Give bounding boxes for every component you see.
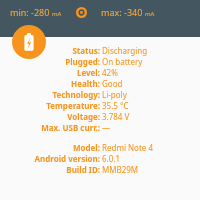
button[interactable]: Voltage: [0, 111, 200, 122]
button[interactable]: Reset measurements [76, 7, 87, 18]
staticText: Discharging [102, 45, 148, 56]
button[interactable]: Plugged: [0, 56, 200, 67]
button[interactable]: Technology: [0, 89, 200, 100]
button[interactable]: Temperature: [0, 100, 200, 111]
button[interactable]: Model: [0, 142, 200, 153]
staticText: On battery [102, 56, 143, 67]
staticText: 6.0.1 [102, 153, 121, 164]
staticText: mA [145, 10, 155, 18]
staticText: Model: [72, 142, 100, 153]
staticText: — [102, 122, 110, 133]
staticText: Voltage: [67, 111, 100, 122]
staticText: MMB29M [102, 164, 139, 175]
button[interactable]: Health: [0, 78, 200, 89]
staticText: Max. USB curr.: [41, 122, 100, 133]
button[interactable]: Status: [0, 45, 200, 56]
staticText: Plugged: [65, 56, 100, 67]
button[interactable]: min: -280 [10, 6, 62, 18]
staticText: Technology: [52, 89, 100, 100]
staticText: Temperature: [46, 100, 100, 111]
button[interactable]: max: -340 [101, 6, 155, 18]
staticText: Build ID: [66, 164, 100, 175]
staticText: mA [52, 10, 62, 18]
staticText: min: -280 [10, 6, 50, 18]
button[interactable]: Android version: [0, 153, 200, 164]
staticText: Android version: [34, 153, 100, 164]
staticText: 35.5 °C [102, 100, 129, 111]
staticText: Good [102, 78, 123, 89]
button[interactable]: Level: [0, 67, 200, 78]
staticText: Health: [71, 78, 100, 89]
staticText: Redmi Note 4 [102, 142, 154, 153]
button[interactable]: Max. USB curr.: [0, 122, 200, 133]
button[interactable]: Battery [12, 25, 46, 59]
staticText: Li-poly [102, 89, 127, 100]
staticText: max: -340 [101, 6, 143, 18]
staticText: 3.784 V [102, 111, 130, 122]
staticText: Level: [76, 67, 100, 78]
staticText: Status: [72, 45, 100, 56]
staticText: 42% [102, 67, 118, 78]
button[interactable]: Build ID: [0, 164, 200, 175]
